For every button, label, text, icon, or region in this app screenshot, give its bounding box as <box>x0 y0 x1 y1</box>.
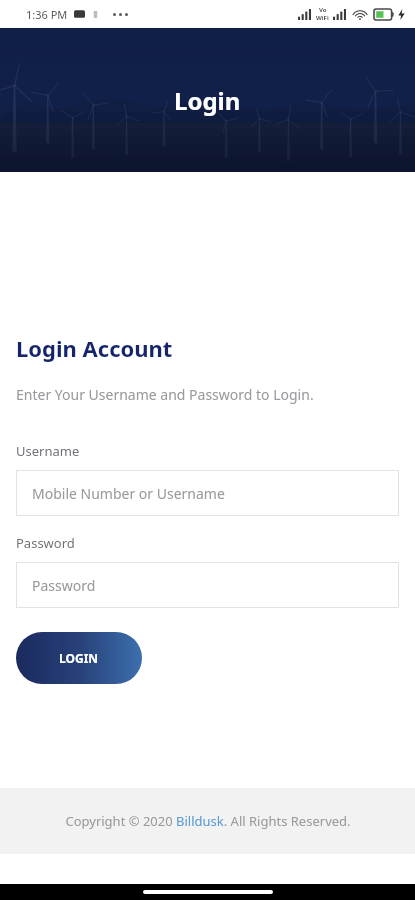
staticText: WiFi <box>316 14 329 22</box>
staticText: LOGIN <box>59 650 99 666</box>
staticText: Username <box>16 442 80 460</box>
staticText: Password <box>32 576 96 595</box>
button[interactable]: Mobile Number or Username <box>16 470 399 516</box>
staticText: Login <box>174 84 241 117</box>
staticText: Password <box>16 534 75 552</box>
staticText: 1:36 PM <box>26 7 68 22</box>
button[interactable]: Password <box>16 562 399 608</box>
staticText: Mobile Number or Username <box>32 484 225 503</box>
button[interactable]: LOGIN <box>16 632 142 684</box>
staticText: Login Account <box>16 333 173 363</box>
staticText: Copyright © 2020 Billdusk. All Rights Re… <box>65 812 351 830</box>
staticText: Enter Your Username and Password to Logi… <box>16 385 314 404</box>
staticText: Vo <box>319 6 327 14</box>
